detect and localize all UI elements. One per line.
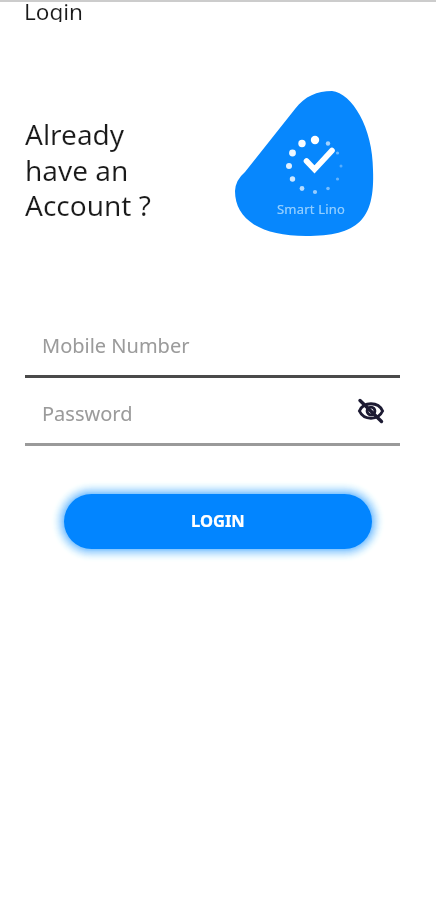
staticText: LOGIN: [191, 509, 245, 531]
button[interactable]: Mobile Number: [25, 330, 400, 378]
button[interactable]: LOGIN: [64, 494, 372, 549]
staticText: Mobile Number: [42, 332, 190, 359]
staticText: Smart Lino: [277, 200, 346, 218]
button[interactable]: Login: [0, 0, 436, 26]
staticText: Password: [42, 400, 133, 427]
button[interactable]: Password: [25, 398, 400, 446]
button[interactable]: Show password: [351, 391, 391, 431]
staticText: Login: [24, 0, 83, 22]
staticText: Already have an Account ?: [25, 115, 151, 224]
